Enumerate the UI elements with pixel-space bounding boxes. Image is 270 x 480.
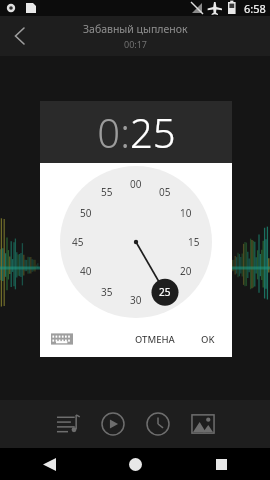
button[interactable]: Play (97, 408, 129, 440)
staticText: 40 (80, 264, 92, 278)
staticText: 20 (180, 264, 192, 278)
button[interactable]: Back (0, 16, 40, 56)
button[interactable]: Recents (205, 448, 237, 480)
staticText: 6:58 (244, 1, 266, 16)
button[interactable]: Keyboard input (51, 329, 73, 349)
staticText: 10 (180, 206, 192, 220)
button[interactable]: Timer (142, 408, 174, 440)
staticText: Забавный цыпленок (83, 22, 188, 36)
staticText: 05 (159, 185, 171, 199)
button[interactable]: Home (119, 448, 151, 480)
button[interactable]: Playlist (52, 408, 84, 440)
button[interactable]: Back (33, 448, 65, 480)
button[interactable]: OK (194, 328, 222, 351)
button[interactable]: ОТМЕНА (128, 328, 182, 351)
staticText: 25 (159, 285, 171, 299)
staticText: 55 (101, 185, 113, 199)
button[interactable]: Gallery (187, 408, 219, 440)
staticText: 15 (188, 235, 200, 249)
staticText: OK (201, 333, 215, 346)
staticText: ОТМЕНА (135, 333, 175, 346)
staticText: 0:25 (97, 105, 176, 159)
staticText: 00:17 (124, 38, 148, 50)
staticText: 30 (130, 293, 142, 307)
staticText: 50 (80, 206, 92, 220)
staticText: 45 (72, 235, 84, 249)
staticText: 00 (130, 177, 142, 191)
staticText: 35 (101, 285, 113, 299)
